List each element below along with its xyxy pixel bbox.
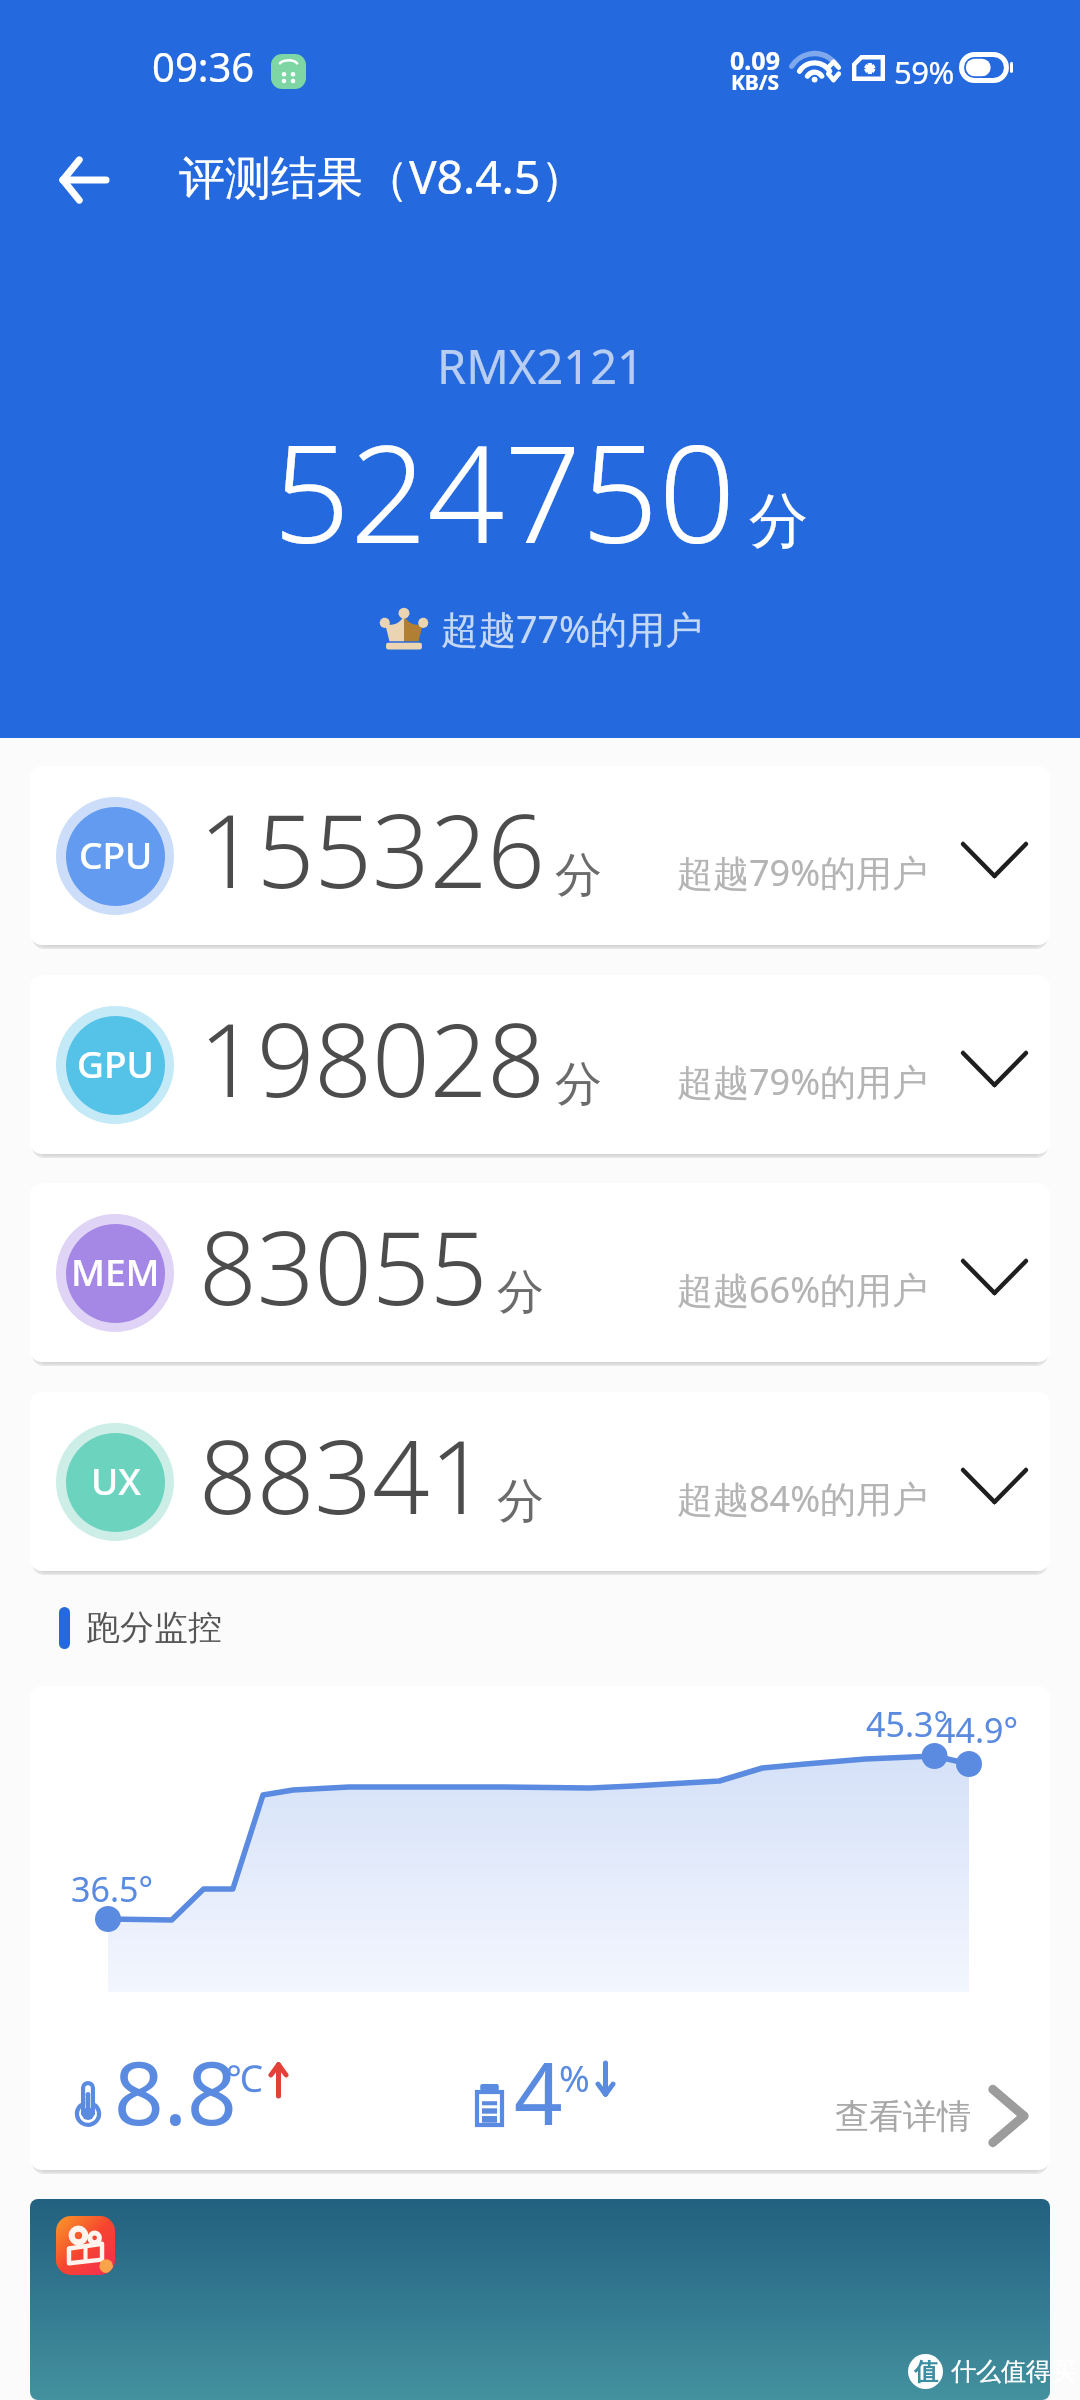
staticText: 8.8 xyxy=(114,2032,237,2150)
staticText: 524750 xyxy=(273,399,736,583)
button[interactable] xyxy=(30,2199,1050,2400)
staticText: 0.09 xyxy=(728,43,782,77)
staticText: 88341 xyxy=(199,1406,488,1544)
staticText: % xyxy=(559,2052,590,2102)
staticText: 155326 xyxy=(199,780,546,918)
button[interactable]: CPU xyxy=(30,766,1050,945)
staticText: 分 xyxy=(555,1055,602,1114)
staticText: 分 xyxy=(497,1472,544,1531)
staticText: 44.9° xyxy=(936,1707,1019,1753)
staticText: 值 xyxy=(914,2357,938,2387)
staticText: 超越84%的用户 xyxy=(677,1474,929,1523)
button[interactable]: MEM xyxy=(30,1183,1050,1362)
staticText: 超越77%的用户 xyxy=(441,603,703,654)
staticText: KB/S xyxy=(728,68,782,97)
staticText: 分 xyxy=(749,484,808,558)
staticText: 59% xyxy=(894,51,954,93)
button[interactable]: 查看详情 xyxy=(835,2078,1027,2154)
staticText: 4 xyxy=(514,2034,563,2150)
staticText: 查看详情 xyxy=(835,2095,971,2138)
staticText: RMX2121 xyxy=(437,334,644,398)
staticText: 36.5° xyxy=(71,1866,154,1912)
staticText: CPU xyxy=(79,829,153,879)
staticText: MEM xyxy=(71,1246,160,1296)
staticText: 跑分监控 xyxy=(86,1606,222,1649)
staticText: 分 xyxy=(555,846,602,905)
staticText: 分 xyxy=(497,1263,544,1322)
staticText: 评测结果（V8.4.5） xyxy=(179,145,587,208)
button[interactable]: UX xyxy=(30,1392,1050,1571)
button[interactable]: Back xyxy=(42,138,126,222)
staticText: UX xyxy=(91,1455,141,1505)
staticText: GPU xyxy=(77,1038,154,1088)
staticText: ℃ xyxy=(226,2052,263,2102)
button[interactable]: GPU xyxy=(30,975,1050,1154)
staticText: 什么值得买 xyxy=(951,2356,1076,2387)
staticText: 198028 xyxy=(199,989,546,1127)
staticText: 83055 xyxy=(199,1197,488,1335)
staticText: 超越66%的用户 xyxy=(677,1265,929,1314)
staticText: 超越79%的用户 xyxy=(677,848,929,897)
staticText: 09:36 xyxy=(152,39,255,93)
staticText: 45.3° xyxy=(866,1701,949,1747)
staticText: 超越79%的用户 xyxy=(677,1057,929,1106)
